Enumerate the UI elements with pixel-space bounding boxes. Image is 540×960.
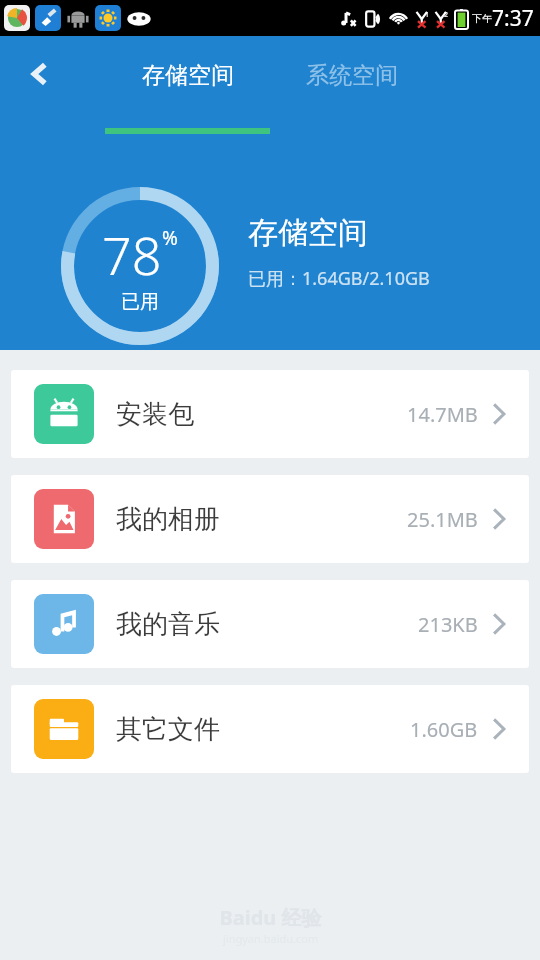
button[interactable]: 存储空间 (106, 50, 270, 100)
staticText: 1 (425, 10, 430, 20)
staticText: 78 (102, 219, 162, 290)
staticText: 存储空间 (248, 214, 368, 252)
staticText: 已用 (121, 290, 159, 314)
staticText: 14.7MB (407, 401, 478, 428)
button[interactable]: 我的音乐 (11, 580, 529, 668)
staticText: 1.60GB (410, 716, 478, 743)
staticText: 我的相册 (116, 503, 220, 536)
staticText: 25.1MB (407, 506, 478, 533)
staticText: 下午 (472, 12, 492, 25)
staticText: Baidu 经验 (219, 904, 322, 931)
staticText: 7:37 (492, 4, 534, 33)
staticText: 2 (444, 10, 449, 20)
staticText: 我的音乐 (116, 608, 220, 641)
button[interactable]: 其它文件 (11, 685, 529, 773)
staticText: 已用：1.64GB/2.10GB (248, 266, 430, 291)
staticText: 其它文件 (116, 713, 220, 746)
button[interactable]: Back (14, 48, 66, 100)
staticText: 安装包 (116, 398, 194, 431)
staticText: % (162, 225, 178, 251)
staticText: 存储空间 (142, 61, 234, 90)
staticText: 213KB (418, 611, 478, 638)
button[interactable]: 系统空间 (270, 50, 434, 100)
button[interactable]: 安装包 (11, 370, 529, 458)
button[interactable]: 我的相册 (11, 475, 529, 563)
staticText: 系统空间 (306, 61, 398, 90)
